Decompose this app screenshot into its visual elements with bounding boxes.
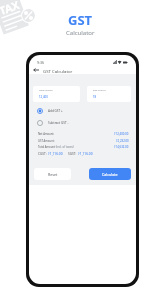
staticText: Reset bbox=[48, 172, 58, 177]
button[interactable]: Subtract GST - bbox=[37, 120, 69, 126]
button[interactable]: Initial Amount bbox=[33, 86, 80, 102]
staticText: Add GST + bbox=[48, 109, 63, 113]
staticText: GST Amount: bbox=[38, 139, 55, 143]
staticText: ₹1,116.00 bbox=[48, 152, 63, 156]
staticText: TAX bbox=[0, 0, 22, 18]
staticText: SGST: bbox=[68, 152, 77, 156]
staticText: 18 bbox=[93, 95, 97, 99]
button[interactable]: Calculate bbox=[89, 168, 131, 180]
staticText: Total Amount bbox=[38, 145, 55, 149]
staticText: Subtract GST - bbox=[48, 121, 69, 125]
staticText: Calculate bbox=[102, 172, 118, 177]
button[interactable]: Rate of GST % bbox=[87, 86, 131, 102]
staticText: ₹12,400.00 bbox=[114, 132, 129, 136]
button[interactable]: Reset bbox=[34, 168, 71, 180]
staticText: Initial Amount bbox=[39, 89, 53, 92]
staticText: GST bbox=[68, 11, 93, 29]
staticText: ₹14,632.00 bbox=[114, 145, 129, 149]
button[interactable]: Add GST + bbox=[37, 108, 63, 114]
staticText: 12,400 bbox=[39, 95, 48, 99]
staticText: 9:36 bbox=[37, 60, 45, 65]
staticText: GST Calculator bbox=[43, 68, 73, 74]
staticText: Calculator bbox=[66, 29, 95, 37]
button[interactable]: Back bbox=[32, 66, 39, 73]
staticText: Net Amount: bbox=[38, 132, 55, 136]
staticText: (incl. of taxes) bbox=[55, 145, 74, 149]
staticText: Rate of GST % bbox=[93, 89, 107, 92]
staticText: ₹2,232.00 bbox=[116, 139, 129, 143]
staticText: CGST: bbox=[38, 152, 47, 156]
staticText: ₹1,116.00 bbox=[78, 152, 93, 156]
